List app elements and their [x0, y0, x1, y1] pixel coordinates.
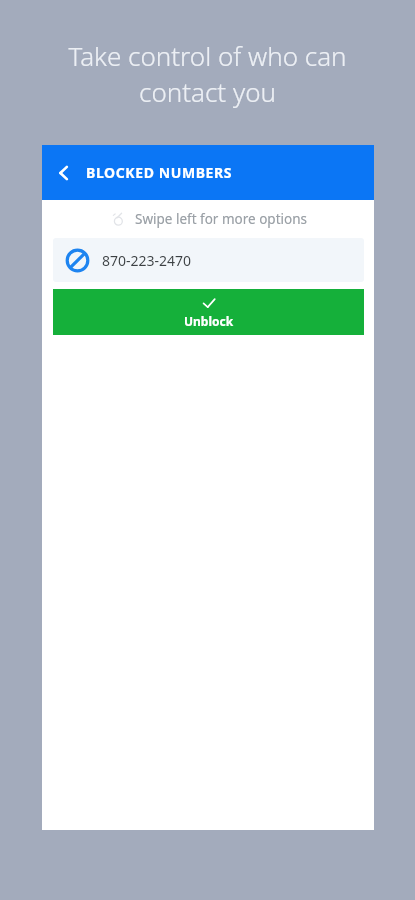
staticText: Unblock: [184, 313, 234, 329]
staticText: Take control of who can contact you: [16, 38, 399, 110]
button[interactable]: Back: [42, 151, 86, 195]
staticText: Swipe left for more options: [135, 210, 307, 228]
staticText: 870-223-2470: [102, 251, 192, 270]
button[interactable]: 870-223-2470: [53, 238, 364, 282]
button[interactable]: Unblock: [53, 289, 364, 335]
staticText: BLOCKED NUMBERS: [86, 163, 233, 182]
